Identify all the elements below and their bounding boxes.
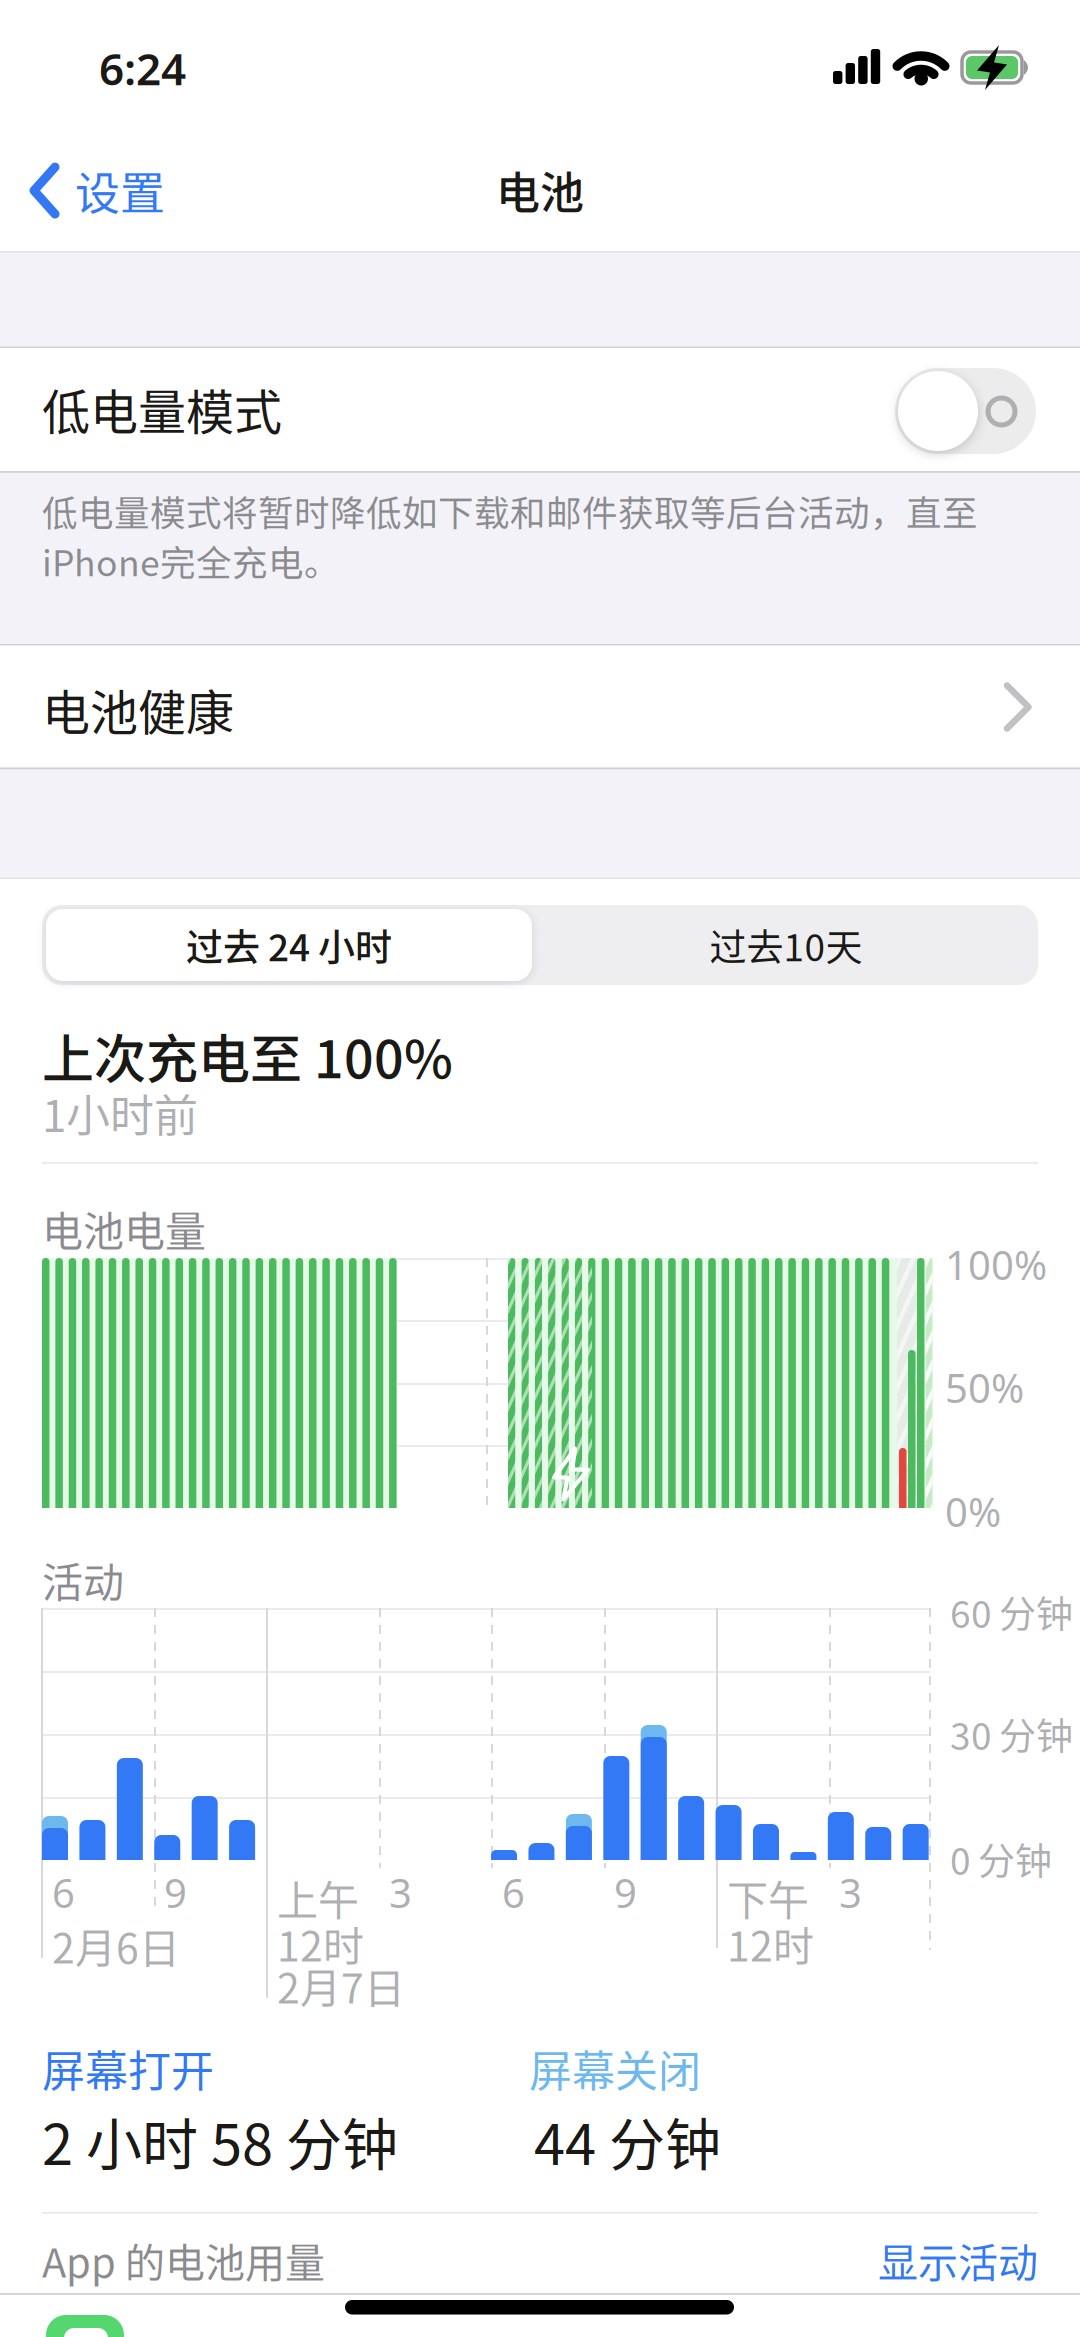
staticText: 6: [52, 1866, 75, 1919]
staticText: 1小时前: [42, 1081, 198, 1145]
staticText: 3: [389, 1866, 412, 1919]
staticText: 屏幕关闭: [529, 2037, 701, 2099]
staticText: 电池: [496, 158, 584, 222]
button[interactable]: 低电量模式: [0, 348, 1080, 471]
staticText: 6:24: [99, 39, 186, 97]
staticText: 上次充电至 100%: [42, 1018, 453, 1093]
staticText: 过去 24 小时: [186, 918, 392, 972]
staticText: 12时: [727, 1914, 814, 1973]
button[interactable]: 设置: [30, 158, 165, 223]
staticText: 9: [614, 1866, 637, 1919]
staticText: 低电量模式将暂时降低如下载和邮件获取等后台活动，直至: [42, 485, 978, 536]
staticText: App 的电池用量: [42, 2231, 325, 2289]
staticText: 0 分钟: [950, 1832, 1052, 1886]
staticText: 3: [839, 1866, 862, 1919]
staticText: 2 小时 58 分钟: [42, 2100, 398, 2181]
staticText: 过去10天: [709, 918, 862, 972]
staticText: 6: [502, 1866, 525, 1919]
staticText: 50%: [945, 1361, 1024, 1414]
staticText: 显示活动: [878, 2231, 1038, 2289]
staticText: 设置: [75, 158, 165, 223]
staticText: 44 分钟: [534, 2100, 721, 2181]
staticText: 12时: [277, 1914, 364, 1973]
button[interactable]: 过去 24 小时: [46, 909, 532, 981]
staticText: 低电量模式: [42, 374, 282, 443]
staticText: 电池电量: [42, 1199, 206, 1258]
staticText: 活动: [42, 1550, 124, 1609]
staticText: 100%: [945, 1238, 1047, 1291]
button[interactable]: 显示活动: [878, 2231, 1038, 2289]
staticText: iPhone完全充电。: [42, 535, 340, 586]
staticText: 0%: [945, 1485, 1001, 1538]
staticText: 上午: [277, 1868, 359, 1927]
button[interactable]: 电池健康: [0, 645, 1080, 767]
staticText: 屏幕打开: [42, 2037, 214, 2099]
staticText: 30 分钟: [950, 1707, 1073, 1761]
staticText: 下午: [727, 1868, 809, 1927]
staticText: 60 分钟: [950, 1585, 1073, 1639]
staticText: 2月7日: [277, 1956, 405, 2015]
staticText: 9: [164, 1866, 187, 1919]
staticText: 2月6日: [52, 1916, 180, 1975]
button[interactable]: 过去10天: [546, 909, 1026, 981]
staticText: 电池健康: [42, 674, 234, 744]
